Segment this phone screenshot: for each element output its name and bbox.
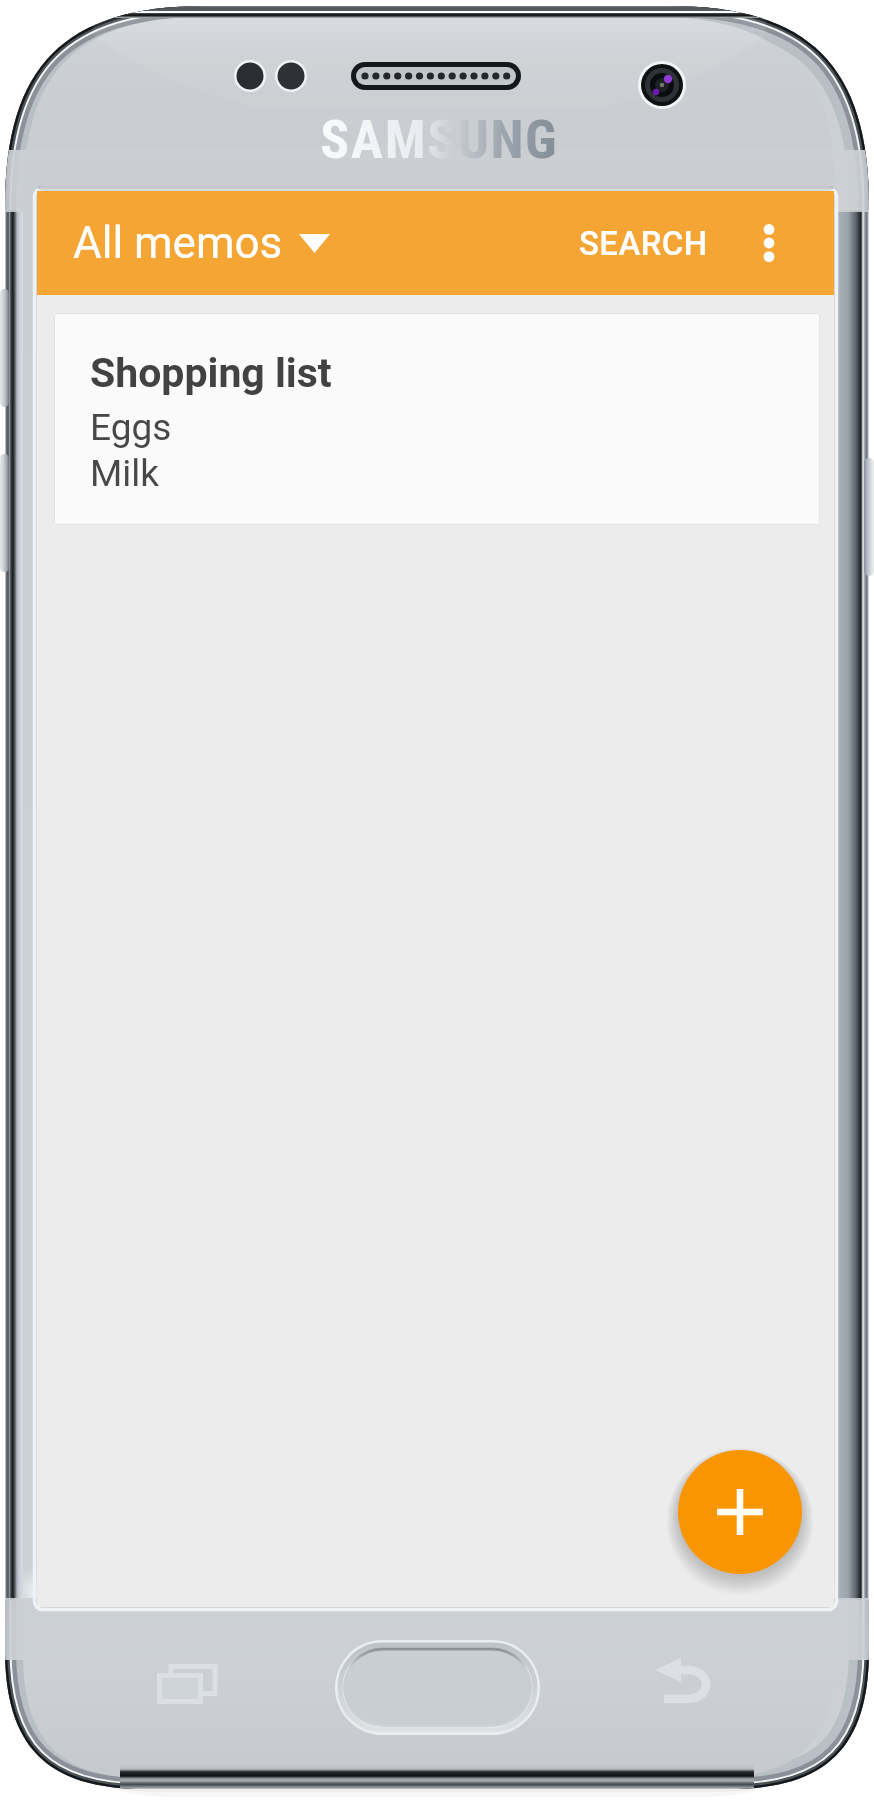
staticText: SEARCH xyxy=(579,224,708,263)
staticText: Eggs Milk xyxy=(90,406,172,495)
button[interactable]: More options xyxy=(738,191,834,295)
staticText: All memos xyxy=(73,217,283,269)
button[interactable]: All memos xyxy=(73,191,330,295)
staticText: SAMSUNG xyxy=(320,108,559,171)
button[interactable]: SEARCH xyxy=(579,191,708,295)
button[interactable]: Add memo xyxy=(678,1450,802,1574)
staticText: Shopping list xyxy=(90,349,332,397)
button[interactable]: Shopping list xyxy=(54,313,820,525)
